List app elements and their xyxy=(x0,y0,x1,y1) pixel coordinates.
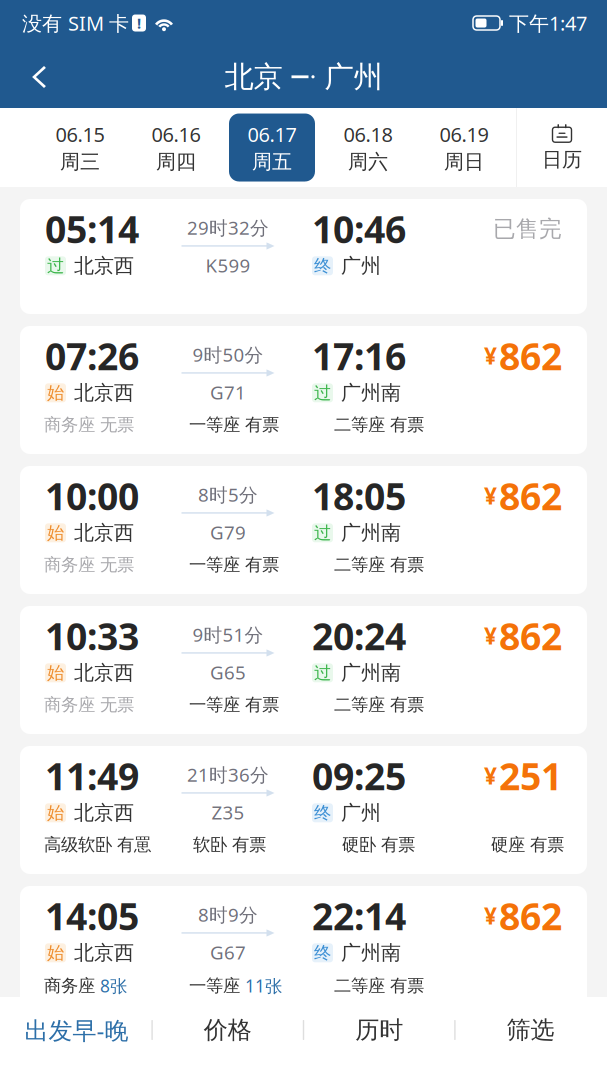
button[interactable]: 06.19 xyxy=(416,108,512,187)
staticText: 始 xyxy=(47,662,64,683)
staticText: K599 xyxy=(205,253,250,278)
staticText: 有票 xyxy=(245,554,279,575)
staticText: 商务座 xyxy=(44,694,95,715)
staticText: 硬卧 xyxy=(342,834,376,855)
staticText: 8时9分 xyxy=(198,902,258,927)
staticText: 二等座 xyxy=(334,975,385,996)
button[interactable]: 14:05 xyxy=(20,886,587,1014)
staticText: 862 xyxy=(499,611,562,661)
button[interactable]: 10:00 xyxy=(20,466,587,594)
button[interactable]: 05:14 xyxy=(20,199,587,314)
staticText: 8张 xyxy=(100,974,127,997)
staticText: 有罳 xyxy=(117,834,151,855)
staticText: 终 xyxy=(314,802,331,823)
staticText: 11:49 xyxy=(45,751,139,801)
staticText: 有票 xyxy=(390,414,424,435)
staticText: 无票 xyxy=(100,694,134,715)
button[interactable]: 出发早-晚 xyxy=(1,997,151,1080)
staticText: 过 xyxy=(314,662,331,683)
staticText: 出发早-晚 xyxy=(24,1014,128,1046)
staticText: 广州 xyxy=(341,801,381,825)
button[interactable]: 10:33 xyxy=(20,606,587,734)
staticText: 有票 xyxy=(390,694,424,715)
staticText: 广州南 xyxy=(341,521,401,545)
staticText: 广州南 xyxy=(341,941,401,965)
button[interactable]: 筛选 xyxy=(456,997,606,1080)
button[interactable]: 06.17 xyxy=(224,108,320,187)
staticText: ¥ xyxy=(484,341,497,371)
staticText: 终 xyxy=(314,942,331,963)
staticText: 筛选 xyxy=(507,1015,555,1045)
button[interactable]: 06.16 xyxy=(128,108,224,187)
button[interactable]: 07:26 xyxy=(20,326,587,454)
staticText: 05:14 xyxy=(45,204,139,254)
button[interactable]: 价格 xyxy=(153,997,303,1080)
staticText: 过 xyxy=(47,255,64,276)
staticText: 周六 xyxy=(348,149,388,174)
button[interactable]: 06.15 xyxy=(32,108,128,187)
staticText: 8时5分 xyxy=(198,482,258,507)
staticText: 始 xyxy=(47,382,64,403)
staticText: 周日 xyxy=(444,149,484,174)
staticText: 高级软卧 xyxy=(44,834,112,855)
staticText: 二等座 xyxy=(334,554,385,575)
staticText: 周五 xyxy=(252,149,292,174)
staticText: 07:26 xyxy=(45,331,139,381)
staticText: 软卧 xyxy=(193,834,227,855)
staticText: 周三 xyxy=(60,149,100,174)
staticText: 06.16 xyxy=(151,121,200,147)
staticText: 硬座 xyxy=(491,834,525,855)
staticText: 862 xyxy=(499,471,562,521)
staticText: 18:05 xyxy=(312,471,406,521)
staticText: 始 xyxy=(47,802,64,823)
staticText: ¥ xyxy=(484,621,497,651)
staticText: 北京西 xyxy=(74,941,134,965)
staticText: 北京西 xyxy=(74,381,134,405)
staticText: 已售完 xyxy=(493,215,562,243)
button[interactable]: Back xyxy=(16,54,62,100)
button[interactable]: 历时 xyxy=(304,997,454,1080)
staticText: 有票 xyxy=(390,554,424,575)
staticText: 06.18 xyxy=(343,121,392,147)
staticText: 商务座 xyxy=(44,975,95,996)
staticText: 终 xyxy=(314,255,331,276)
staticText: 北京西 xyxy=(74,661,134,685)
staticText: 历时 xyxy=(355,1015,403,1045)
button[interactable]: 06.18 xyxy=(320,108,416,187)
staticText: G79 xyxy=(210,520,246,545)
staticText: 商务座 xyxy=(44,414,95,435)
staticText: 21时36分 xyxy=(187,762,269,787)
staticText: 有票 xyxy=(381,834,415,855)
staticText: 无票 xyxy=(100,554,134,575)
staticText: 北京西 xyxy=(74,801,134,825)
staticText: 一等座 xyxy=(189,694,240,715)
staticText: 251 xyxy=(499,751,562,801)
staticText: 有票 xyxy=(245,414,279,435)
staticText: 始 xyxy=(47,522,64,543)
staticText: 09:25 xyxy=(312,751,406,801)
staticText: 14:05 xyxy=(45,891,139,941)
staticText: 10:46 xyxy=(312,204,406,254)
button[interactable]: 11:49 xyxy=(20,746,587,874)
staticText: 周四 xyxy=(156,149,196,174)
staticText: 06.15 xyxy=(55,121,104,147)
staticText: ¥ xyxy=(484,901,497,931)
staticText: ¥ xyxy=(484,761,497,791)
staticText: 广州 xyxy=(324,59,382,95)
staticText: 无票 xyxy=(100,414,134,435)
staticText: 北京西 xyxy=(74,254,134,278)
staticText: 有票 xyxy=(245,694,279,715)
button[interactable]: 日历 xyxy=(517,108,607,187)
staticText: 862 xyxy=(499,891,562,941)
staticText: 06.19 xyxy=(439,121,488,147)
staticText: 一等座 xyxy=(189,554,240,575)
staticText: 二等座 xyxy=(334,694,385,715)
staticText: G65 xyxy=(210,660,246,685)
staticText: 下午1:47 xyxy=(509,10,587,36)
staticText: 广州 xyxy=(341,254,381,278)
staticText: 9时50分 xyxy=(192,342,263,367)
staticText: 10:33 xyxy=(45,611,139,661)
staticText: 11张 xyxy=(245,974,282,997)
staticText: 广州南 xyxy=(341,381,401,405)
staticText: 过 xyxy=(314,382,331,403)
